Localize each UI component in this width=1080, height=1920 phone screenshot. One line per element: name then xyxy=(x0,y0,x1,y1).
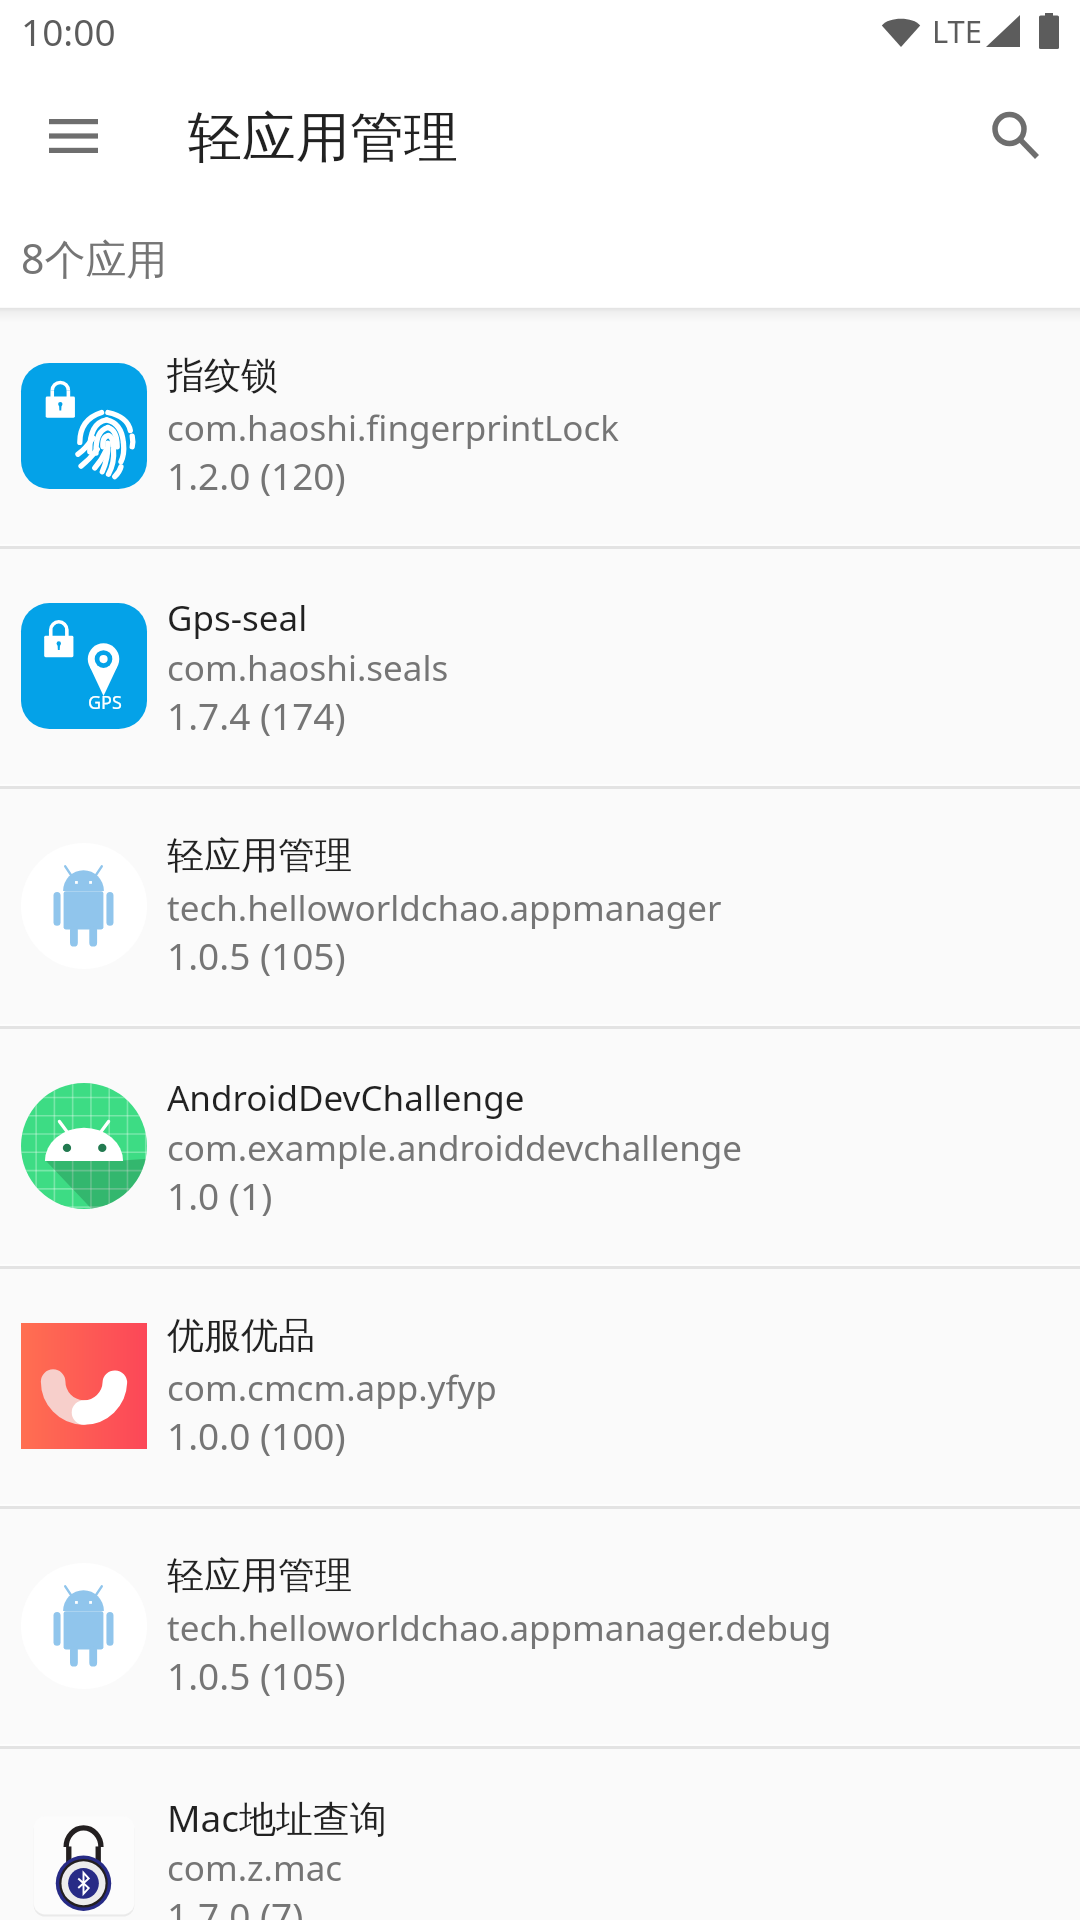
staticText: 轻应用管理 xyxy=(167,832,352,879)
button[interactable]: AndroidDevChallenge xyxy=(0,1027,1080,1267)
staticText: 1.0.5 (105) xyxy=(167,1650,346,1700)
staticText: 优服优品 xyxy=(167,1312,315,1359)
staticText: 轻应用管理 xyxy=(167,1552,352,1599)
staticText: 1.2.0 (120) xyxy=(167,450,346,500)
staticText: 1.7.0 (7) xyxy=(167,1890,304,1920)
staticText: com.z.mac xyxy=(167,1844,343,1892)
staticText: com.haoshi.seals xyxy=(167,644,449,692)
button[interactable]: 轻应用管理 xyxy=(0,1507,1080,1747)
staticText: AndroidDevChallenge xyxy=(167,1074,525,1122)
staticText: com.haoshi.fingerprintLock xyxy=(167,404,620,452)
staticText: 轻应用管理 xyxy=(188,104,458,172)
button[interactable]: Search xyxy=(980,106,1060,178)
staticText: tech.helloworldchao.appmanager.debug xyxy=(167,1604,832,1652)
staticText: 1.0.5 (105) xyxy=(167,930,346,980)
staticText: com.cmcm.app.yfyp xyxy=(167,1364,497,1412)
staticText: LTE xyxy=(932,10,983,52)
staticText: 1.0 (1) xyxy=(167,1170,273,1220)
staticText: Mac地址查询 xyxy=(167,1792,388,1843)
button[interactable]: Menu xyxy=(33,106,113,166)
staticText: Gps-seal xyxy=(167,594,308,642)
staticText: 8个应用 xyxy=(21,230,168,286)
button[interactable]: 指纹锁 xyxy=(0,307,1080,547)
staticText: 10:00 xyxy=(21,6,116,56)
staticText: 指纹锁 xyxy=(167,352,278,399)
staticText: GPS xyxy=(88,690,122,715)
staticText: 1.7.4 (174) xyxy=(167,690,346,740)
staticText: com.example.androiddevchallenge xyxy=(167,1124,743,1172)
button[interactable]: Mac地址查询 xyxy=(0,1747,1080,1920)
button[interactable]: 优服优品 xyxy=(0,1267,1080,1507)
button[interactable]: 轻应用管理 xyxy=(0,787,1080,1027)
button[interactable]: GPS xyxy=(0,547,1080,787)
staticText: tech.helloworldchao.appmanager xyxy=(167,884,722,932)
staticText: 1.0.0 (100) xyxy=(167,1410,346,1460)
